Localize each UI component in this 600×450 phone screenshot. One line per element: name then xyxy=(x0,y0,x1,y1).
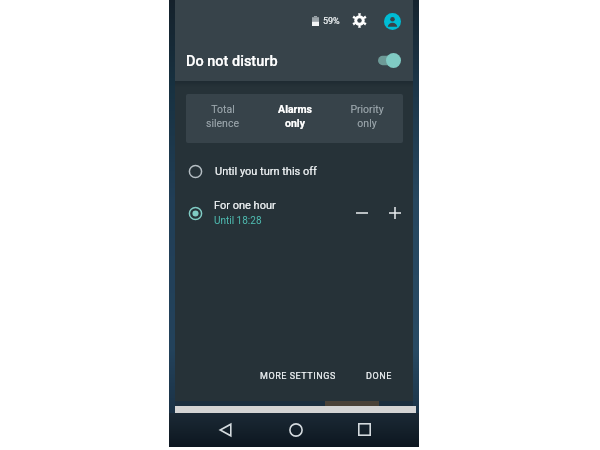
button[interactable]: Decrease time xyxy=(350,201,374,225)
button[interactable]: Back xyxy=(213,417,238,442)
button[interactable]: Settings xyxy=(350,11,369,30)
button[interactable]: Recent apps xyxy=(352,417,377,442)
staticText: Priority xyxy=(350,103,384,115)
button[interactable]: Priority xyxy=(331,94,403,143)
staticText: Alarms xyxy=(278,103,312,115)
staticText: Total xyxy=(211,103,235,115)
staticText: Do not disturb xyxy=(186,53,278,70)
button[interactable]: Do not disturb switch xyxy=(378,53,401,68)
staticText: Until 18:28 xyxy=(214,215,262,227)
staticText: silence xyxy=(206,117,239,129)
button[interactable]: Until you turn this off xyxy=(175,156,413,185)
staticText: MORE SETTINGS xyxy=(260,371,336,382)
staticText: Until you turn this off xyxy=(215,165,317,178)
staticText: 59% xyxy=(323,16,340,27)
staticText: For one hour xyxy=(214,199,276,212)
button[interactable]: Alarms xyxy=(259,94,331,143)
button[interactable]: Account xyxy=(383,12,401,30)
button[interactable]: MORE SETTINGS xyxy=(255,366,341,387)
button[interactable]: Total xyxy=(186,94,259,143)
button[interactable]: Increase time xyxy=(383,201,407,225)
staticText: only xyxy=(285,117,305,129)
staticText: DONE xyxy=(366,371,392,382)
button[interactable]: DONE xyxy=(361,366,397,387)
staticText: only xyxy=(357,117,377,129)
button[interactable]: For one hour xyxy=(175,196,413,230)
button[interactable]: Home xyxy=(283,417,308,442)
